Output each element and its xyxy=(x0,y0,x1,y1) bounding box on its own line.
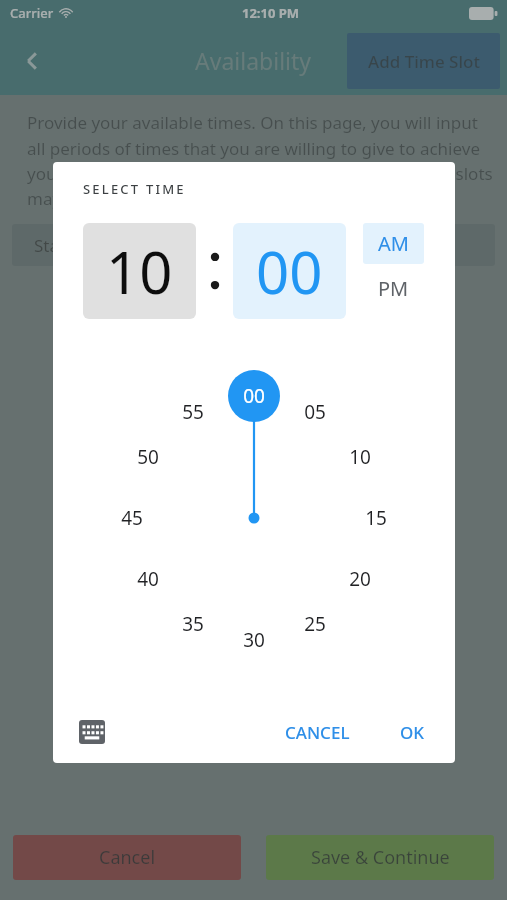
staticText: Save & Continue xyxy=(311,845,450,870)
staticText: OK xyxy=(400,721,425,744)
button[interactable]: 00 xyxy=(233,223,346,319)
button[interactable]: 20 xyxy=(338,565,382,593)
staticText: PM xyxy=(378,275,409,302)
button[interactable]: 10 xyxy=(83,223,196,319)
staticText: Cancel xyxy=(99,845,156,870)
staticText: AM xyxy=(378,230,409,257)
button[interactable]: 15 xyxy=(354,504,398,532)
button[interactable]: 30 xyxy=(232,626,276,654)
staticText: CANCEL xyxy=(285,721,350,744)
button[interactable]: PM xyxy=(363,264,424,312)
staticText: 45 xyxy=(121,505,143,531)
button[interactable]: 45 xyxy=(110,504,154,532)
button[interactable]: 40 xyxy=(126,565,170,593)
button[interactable]: Cancel xyxy=(13,835,241,880)
staticText: 15 xyxy=(365,505,387,531)
staticText: Start Time xyxy=(34,234,116,257)
button[interactable]: 05 xyxy=(293,398,337,426)
staticText: 55 xyxy=(182,399,204,425)
button[interactable]: 00 xyxy=(232,382,276,410)
staticText: 25 xyxy=(304,611,326,637)
staticText: 00 xyxy=(243,383,265,409)
staticText: 50 xyxy=(137,444,159,470)
button[interactable]: 10 xyxy=(338,443,382,471)
button[interactable]: Back xyxy=(8,37,56,85)
button[interactable]: 55 xyxy=(171,398,215,426)
staticText: 20 xyxy=(349,566,371,592)
staticText: Availability xyxy=(195,45,312,76)
staticText: 35 xyxy=(182,611,204,637)
button[interactable]: 50 xyxy=(126,443,170,471)
staticText: Carrier xyxy=(10,4,54,22)
button[interactable]: Save & Continue xyxy=(266,835,494,880)
staticText: Provide your available times. On this pa… xyxy=(27,111,497,210)
staticText: SELECT TIME xyxy=(83,180,186,198)
button[interactable]: AM xyxy=(363,223,424,264)
button[interactable]: 35 xyxy=(171,610,215,638)
staticText: 40 xyxy=(137,566,159,592)
button[interactable]: 25 xyxy=(293,610,337,638)
button[interactable]: Add Time Slot xyxy=(347,33,500,89)
button[interactable]: Start Time xyxy=(12,224,495,266)
button[interactable]: CANCEL xyxy=(275,713,360,752)
staticText: Add Time Slot xyxy=(368,50,480,73)
staticText: 10 xyxy=(106,232,173,311)
staticText: 05 xyxy=(304,399,326,425)
staticText: 00 xyxy=(256,232,323,311)
staticText: 30 xyxy=(243,627,265,653)
staticText: 12:10 PM xyxy=(242,4,300,22)
staticText: 10 xyxy=(349,444,371,470)
button[interactable]: OK xyxy=(390,713,435,752)
button[interactable]: Switch to text input xyxy=(75,715,109,749)
